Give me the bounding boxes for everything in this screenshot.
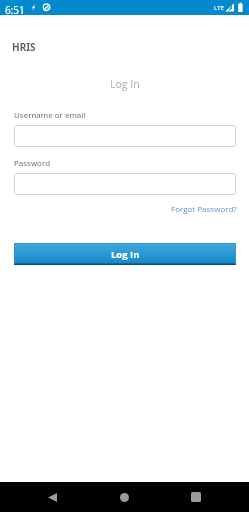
staticText: Forgot Password? (171, 203, 237, 214)
staticText: Password (14, 157, 51, 168)
staticText: Username or email (14, 109, 86, 120)
button[interactable]: Recent apps (175, 482, 217, 512)
button[interactable]: Forgot Password? (171, 203, 237, 214)
button[interactable] (14, 125, 236, 147)
staticText: HRIS (12, 40, 36, 54)
staticText: LTE (214, 4, 224, 12)
staticText: 6:51 (5, 3, 25, 17)
button[interactable]: Home (103, 482, 145, 512)
button[interactable]: Back (31, 482, 73, 512)
button[interactable] (14, 173, 236, 195)
staticText: Log In (111, 248, 140, 261)
staticText: Log In (110, 77, 140, 91)
button[interactable]: Log In (14, 243, 236, 265)
